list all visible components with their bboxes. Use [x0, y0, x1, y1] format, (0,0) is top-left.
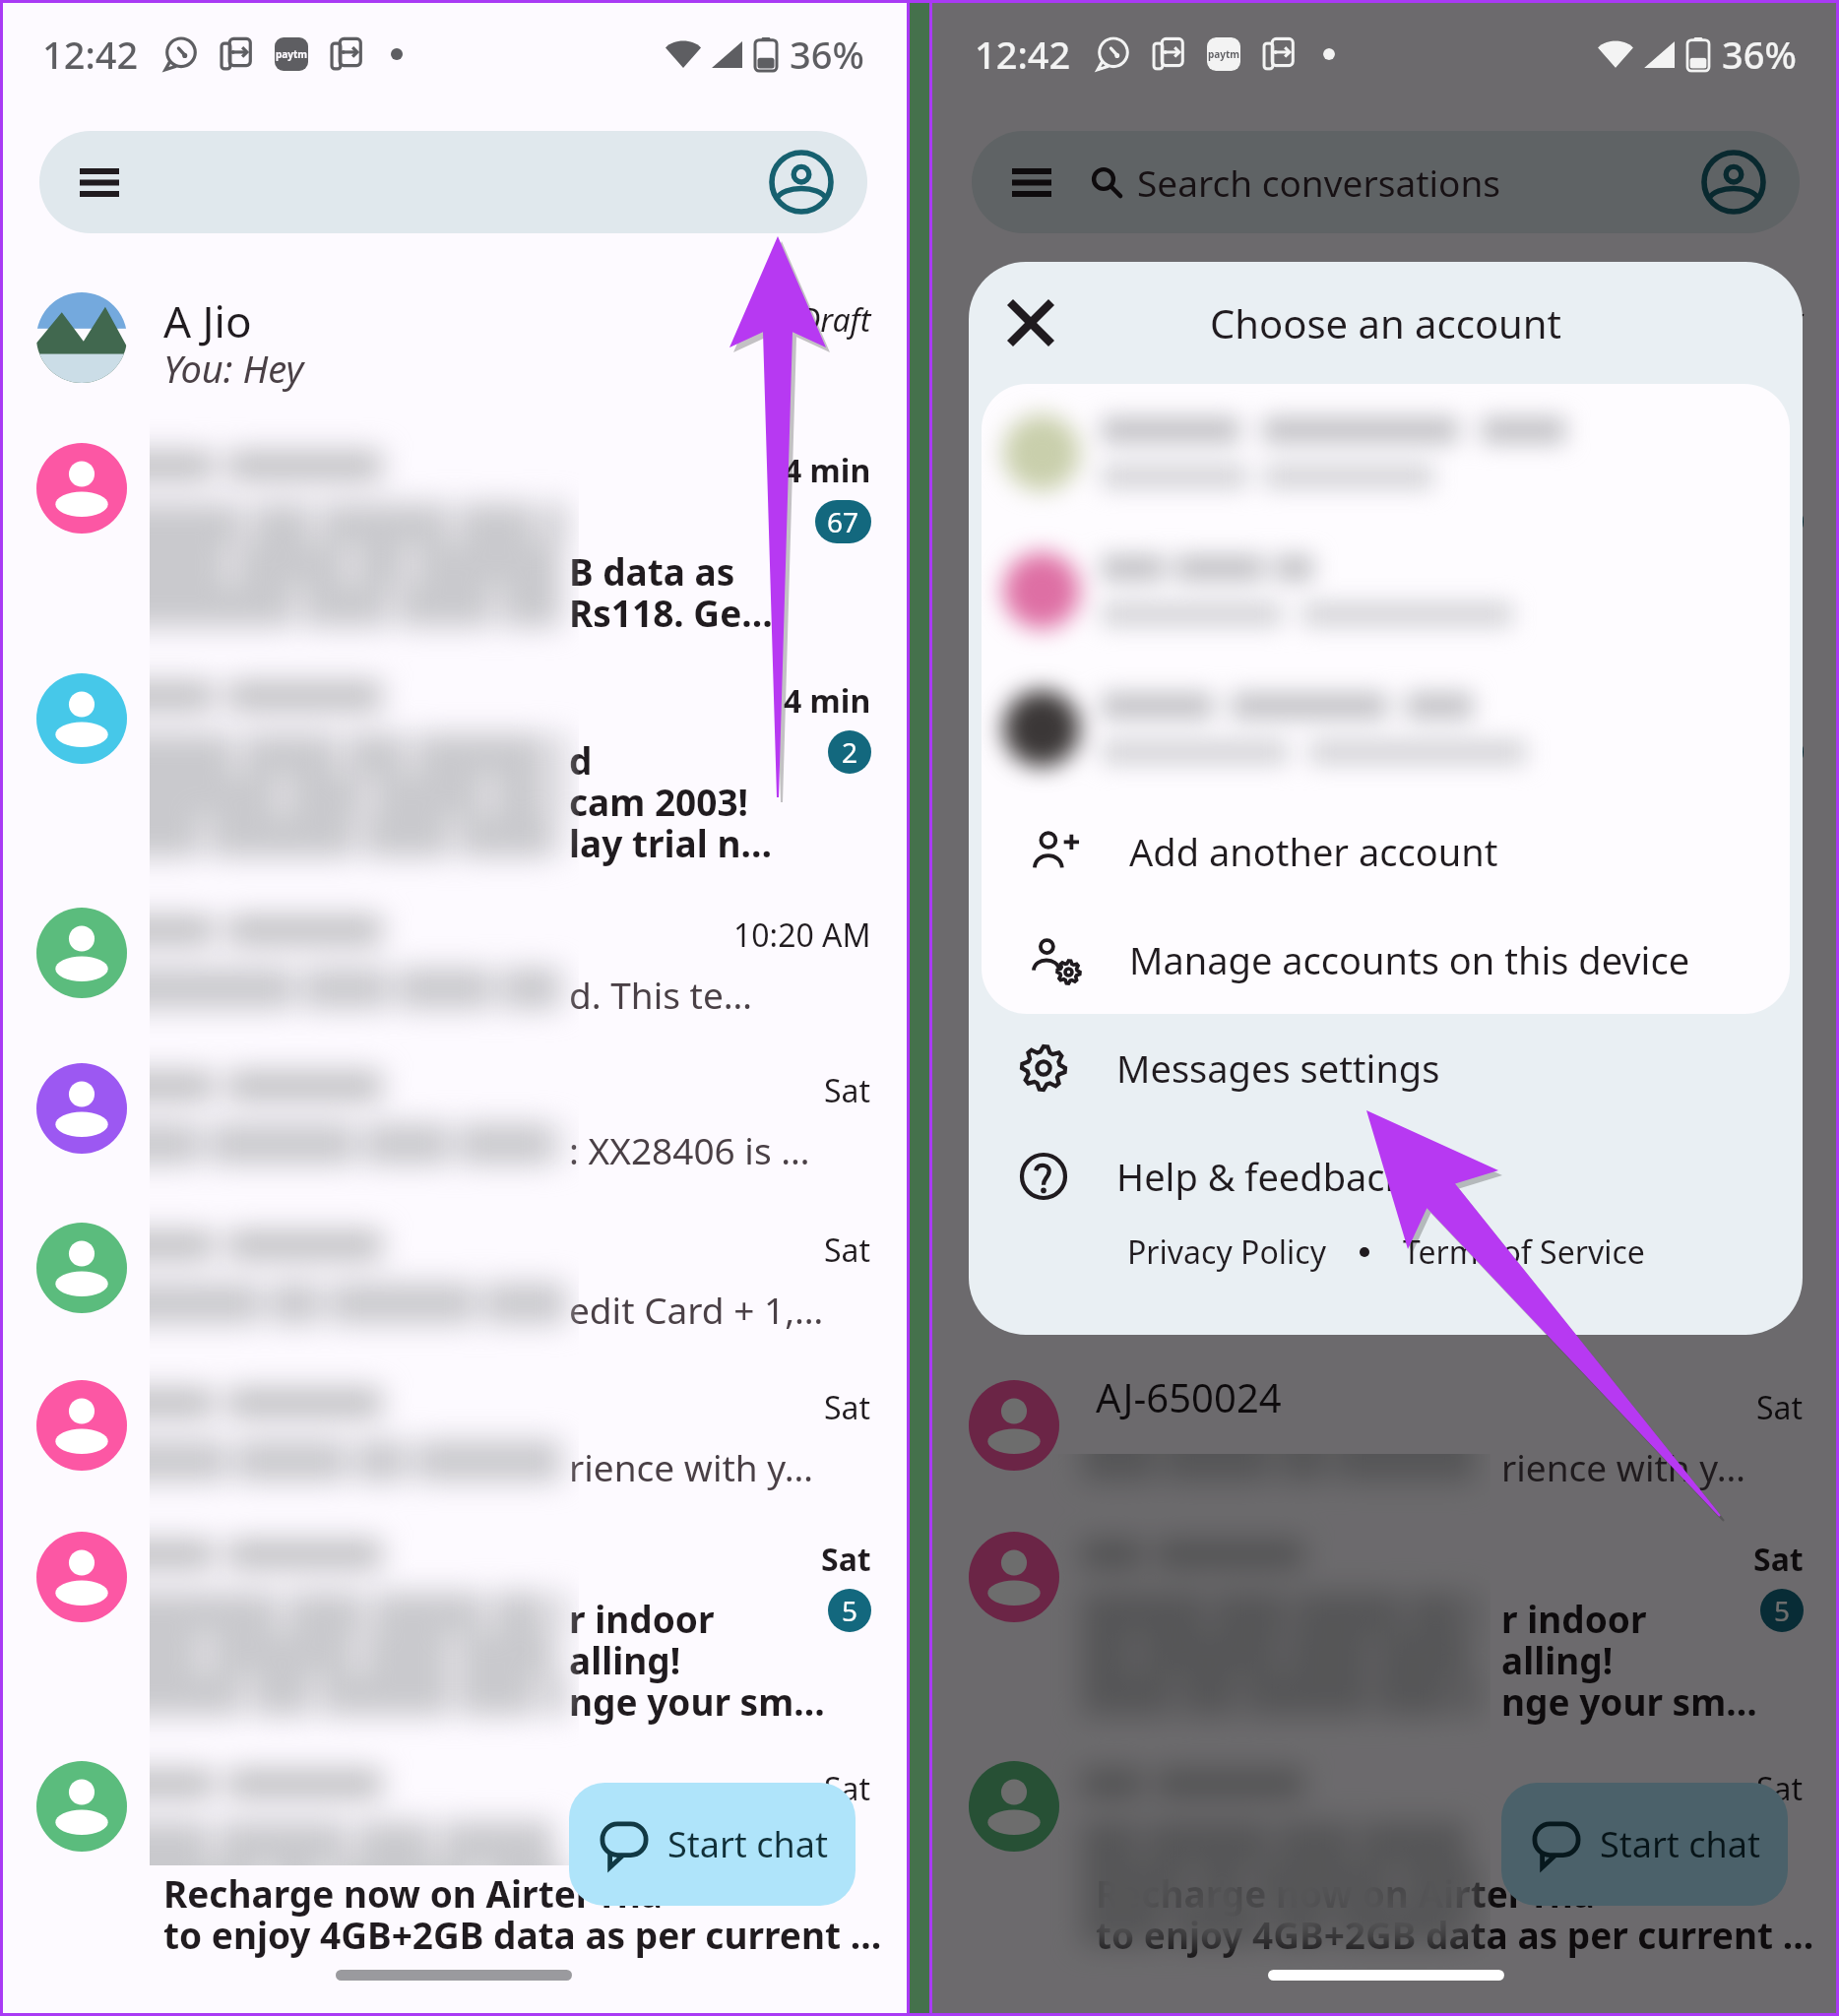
button[interactable]: r indoor — [932, 1500, 1839, 1730]
button[interactable]: Open navigation menu — [39, 131, 867, 233]
button[interactable]: Account — [1700, 149, 1767, 216]
staticText: Search conversations — [1137, 157, 1501, 207]
staticText: B data as — [569, 546, 735, 596]
staticText: 4 min — [784, 679, 871, 723]
button[interactable]: B data as — [932, 411, 1839, 642]
staticText: AJ-650024 — [1096, 1370, 1282, 1423]
staticText: 4 min — [784, 449, 871, 492]
staticText: 36% — [790, 29, 864, 80]
button[interactable]: rience with y… — [0, 1349, 907, 1500]
button[interactable]: Close — [994, 286, 1067, 359]
staticText: paytm — [1208, 47, 1240, 61]
staticText: nge your sm… — [569, 1676, 825, 1726]
staticText: Add another account — [1129, 826, 1498, 877]
staticText: 12:42 — [42, 29, 139, 80]
staticText: lay trial n… — [569, 818, 773, 867]
button[interactable] — [982, 384, 1790, 522]
button[interactable]: Privacy Policy — [1127, 1230, 1326, 1274]
staticText: nge your sm… — [1501, 1676, 1757, 1726]
staticText: You: Hey — [163, 343, 304, 394]
staticText: Sat — [821, 1538, 871, 1581]
button[interactable]: Add another account — [982, 797, 1790, 906]
button[interactable]: d — [0, 642, 907, 876]
staticText: : XX28406 is … — [569, 1125, 810, 1174]
staticText: 67 — [827, 503, 859, 540]
button[interactable]: Open navigation menu — [992, 143, 1071, 221]
button[interactable]: Start chat — [1501, 1783, 1788, 1906]
staticText: 12:42 — [975, 29, 1071, 80]
staticText: Sat — [824, 1386, 871, 1429]
button[interactable]: Sat — [0, 1730, 907, 2016]
staticText: r indoor — [569, 1594, 715, 1643]
button[interactable]: A Jio — [932, 261, 1839, 411]
button[interactable]: rience with y… — [932, 1349, 1839, 1500]
staticText: cam 2003! — [569, 777, 749, 826]
staticText: paytm — [1208, 47, 1240, 61]
staticText: Sat — [1756, 1069, 1804, 1112]
staticText: to enjoy 4GB+2GB data as per current … — [163, 1910, 882, 1959]
staticText: Sat — [824, 1228, 871, 1272]
button[interactable]: Messages settings — [969, 1014, 1803, 1122]
button[interactable]: Start chat — [569, 1783, 856, 1906]
staticText: Choose an account — [1210, 296, 1561, 349]
button[interactable]: Sat — [932, 1730, 1839, 2016]
staticText: 36% — [1722, 29, 1797, 80]
staticText: edit Card + 1,… — [569, 1285, 824, 1334]
staticText: Messages settings — [1116, 1042, 1440, 1094]
staticText: d — [1501, 735, 1525, 785]
staticText: 5 — [1774, 1592, 1791, 1629]
staticText: Recharge now on Airtel Tha — [1096, 1868, 1596, 1918]
button[interactable]: edit Card + 1,… — [932, 1191, 1839, 1349]
staticText: d — [569, 735, 593, 785]
staticText: to enjoy 4GB+2GB data as per current … — [1096, 1910, 1814, 1959]
staticText: Start chat — [667, 1820, 828, 1868]
button[interactable]: A Jio — [0, 261, 907, 411]
button[interactable]: r indoor — [0, 1500, 907, 1730]
button[interactable]: edit Card + 1,… — [0, 1191, 907, 1349]
button[interactable]: Open navigation menu — [972, 131, 1800, 233]
button[interactable]: : XX28406 is … — [932, 1032, 1839, 1191]
button[interactable]: d. This te… — [0, 876, 907, 1032]
staticText: 67 — [1759, 503, 1792, 540]
button[interactable]: Help & feedback — [969, 1122, 1803, 1230]
staticText: rience with y… — [1501, 1442, 1745, 1491]
button[interactable]: Account — [768, 149, 835, 216]
staticText: Recharge now on Airtel Tha — [163, 1868, 664, 1918]
staticText: 10:20 AM — [733, 913, 871, 957]
staticText: Sat — [1756, 1228, 1804, 1272]
staticText: Draft — [799, 298, 871, 342]
button[interactable]: Open navigation menu — [60, 143, 139, 221]
staticText: Manage accounts on this device — [1129, 934, 1690, 985]
button[interactable]: d — [932, 642, 1839, 876]
staticText: 4 min — [1716, 449, 1804, 492]
staticText: 10:20 AM — [1666, 913, 1804, 957]
staticText: d. This te… — [1501, 970, 1685, 1019]
staticText: 12:42 — [975, 29, 1071, 80]
staticText: paytm — [276, 47, 308, 61]
staticText: Rs118. Ge… — [1501, 588, 1705, 637]
staticText: 2 — [1774, 733, 1791, 771]
staticText: Sat — [1756, 1386, 1804, 1429]
staticText: 5 — [842, 1592, 858, 1629]
staticText: d. This te… — [569, 970, 753, 1019]
button[interactable] — [982, 522, 1790, 660]
button[interactable]: Manage accounts on this device — [982, 906, 1790, 1014]
button[interactable]: Terms of Service — [1403, 1230, 1645, 1274]
staticText: Sat — [824, 1069, 871, 1112]
staticText: Sat — [1756, 1767, 1804, 1810]
staticText: 4 min — [1716, 679, 1804, 723]
staticText: Rs118. Ge… — [569, 588, 773, 637]
staticText: Draft — [1732, 298, 1804, 342]
button[interactable]: : XX28406 is … — [0, 1032, 907, 1191]
staticText: Sat — [824, 1767, 871, 1810]
staticText: alling! — [1501, 1635, 1614, 1684]
button[interactable]: B data as — [0, 411, 907, 642]
staticText: alling! — [569, 1635, 681, 1684]
button[interactable]: d. This te… — [932, 876, 1839, 1032]
button[interactable] — [982, 660, 1790, 797]
